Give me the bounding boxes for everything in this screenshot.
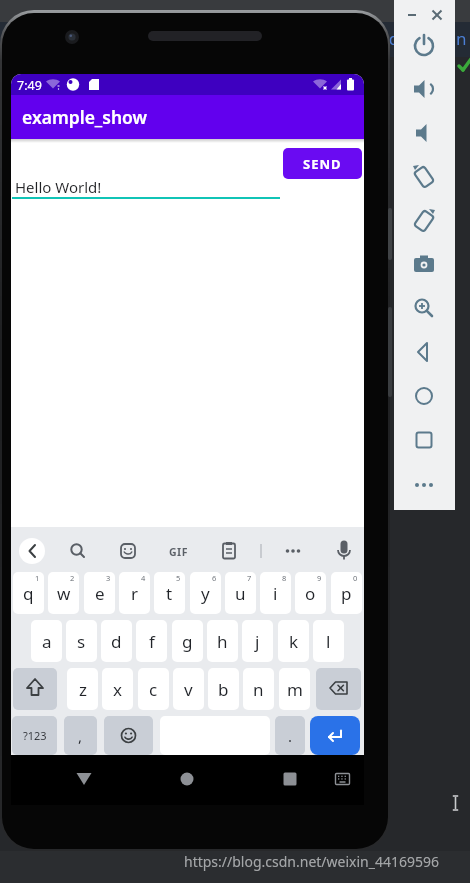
button[interactable] — [407, 204, 441, 238]
button[interactable] — [407, 247, 441, 281]
button[interactable] — [407, 116, 441, 150]
staticText: g — [182, 630, 193, 653]
staticText: u — [235, 582, 246, 605]
button[interactable]: n — [243, 668, 274, 710]
staticText: example_show — [22, 105, 148, 129]
button[interactable]: c — [138, 668, 169, 710]
button[interactable] — [310, 716, 360, 755]
staticText: t — [166, 582, 173, 605]
button[interactable] — [407, 468, 441, 502]
staticText: v — [184, 678, 193, 701]
button[interactable]: j — [242, 620, 273, 662]
button[interactable]: l — [313, 620, 344, 662]
staticText: https://blog.csdn.net/weixin_44169596 — [184, 852, 440, 871]
staticText: w — [57, 582, 71, 605]
staticText: l — [326, 630, 331, 653]
button[interactable]: v — [173, 668, 204, 710]
staticText: n — [456, 27, 467, 50]
button[interactable]: r — [119, 572, 150, 614]
button[interactable] — [104, 716, 153, 755]
button[interactable]: . — [275, 716, 305, 755]
staticText: n — [253, 678, 264, 701]
button[interactable] — [67, 540, 89, 562]
button[interactable] — [316, 668, 361, 710]
staticText: . — [288, 726, 293, 746]
button[interactable] — [13, 668, 57, 710]
staticText: ?123 — [23, 728, 47, 743]
staticText: 5 — [176, 573, 181, 583]
staticText: SEND — [303, 155, 342, 173]
button[interactable]: q — [13, 572, 44, 614]
button[interactable]: s — [66, 620, 97, 662]
staticText: GIF — [169, 545, 188, 559]
staticText: e — [95, 582, 105, 605]
staticText: 1 — [35, 573, 40, 583]
staticText: r — [131, 582, 139, 605]
staticText: i — [273, 582, 278, 605]
staticText: 9 — [317, 573, 322, 583]
staticText: j — [255, 630, 260, 653]
button[interactable] — [407, 423, 441, 457]
button[interactable]: a — [31, 620, 62, 662]
button[interactable]: SEND — [283, 148, 362, 179]
button[interactable] — [173, 765, 201, 793]
staticText: f — [149, 630, 155, 653]
staticText: h — [217, 630, 228, 653]
button[interactable]: u — [225, 572, 256, 614]
staticText: b — [218, 678, 229, 701]
staticText: x — [113, 678, 122, 701]
staticText: o — [305, 582, 316, 605]
button[interactable] — [407, 28, 441, 62]
staticText: Hello World! — [15, 177, 102, 197]
button[interactable]: h — [207, 620, 238, 662]
staticText: k — [289, 630, 299, 653]
button[interactable]: i — [260, 572, 291, 614]
staticText: 3 — [106, 573, 111, 583]
button[interactable]: w — [48, 572, 79, 614]
button[interactable] — [427, 5, 447, 25]
button[interactable] — [19, 538, 45, 564]
button[interactable]: y — [190, 572, 221, 614]
button[interactable]: d — [101, 620, 132, 662]
staticText: 6 — [212, 573, 217, 583]
button[interactable]: b — [208, 668, 239, 710]
button[interactable]: m — [279, 668, 310, 710]
staticText: 0 — [353, 573, 358, 583]
button[interactable]: k — [278, 620, 309, 662]
staticText: y — [201, 582, 210, 605]
staticText: m — [287, 678, 303, 701]
button[interactable]: e — [84, 572, 115, 614]
staticText: , — [78, 726, 83, 746]
button[interactable] — [402, 5, 422, 25]
button[interactable]: t — [154, 572, 185, 614]
button[interactable] — [407, 72, 441, 106]
staticText: 4 — [141, 573, 146, 583]
staticText: 2 — [70, 573, 75, 583]
button[interactable] — [407, 291, 441, 325]
button[interactable]: x — [102, 668, 133, 710]
staticText: z — [79, 678, 87, 701]
button[interactable]: ?123 — [12, 716, 57, 755]
button[interactable]: p — [331, 572, 362, 614]
staticText: s — [77, 630, 86, 653]
button[interactable]: z — [67, 668, 98, 710]
staticText: a — [42, 630, 52, 653]
button[interactable]: g — [172, 620, 203, 662]
button[interactable]: f — [136, 620, 167, 662]
button[interactable]: , — [64, 716, 97, 755]
staticText: c — [149, 678, 158, 701]
button[interactable] — [71, 765, 99, 793]
button[interactable] — [407, 160, 441, 194]
staticText: q — [23, 582, 34, 605]
staticText: d — [111, 630, 122, 653]
staticText: 7 — [247, 573, 252, 583]
staticText: 8 — [282, 573, 287, 583]
button[interactable] — [407, 335, 441, 369]
button[interactable] — [407, 379, 441, 413]
button[interactable]: o — [295, 572, 326, 614]
staticText: oid — [374, 27, 400, 50]
button[interactable] — [276, 765, 304, 793]
staticText: p — [341, 582, 352, 605]
staticText: 7:49 — [17, 77, 42, 94]
